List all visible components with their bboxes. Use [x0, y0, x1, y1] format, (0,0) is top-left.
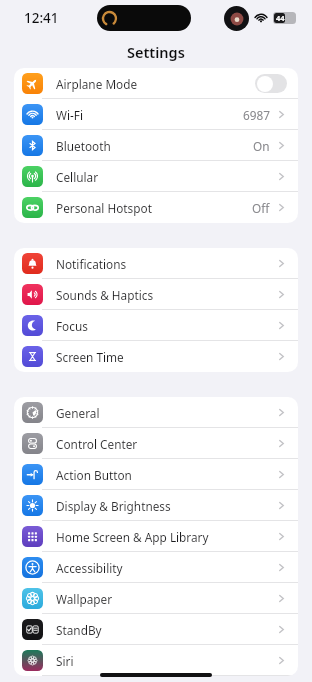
- button[interactable]: Home Screen & App Library: [14, 521, 298, 552]
- button[interactable]: Wi-Fi: [14, 99, 298, 130]
- staticText: Control Center: [56, 436, 276, 452]
- staticText: On: [253, 138, 270, 154]
- button[interactable]: Notifications: [14, 248, 298, 279]
- staticText: Accessibility: [56, 560, 276, 576]
- button[interactable]: Screen Time: [14, 341, 298, 372]
- staticText: General: [56, 405, 276, 421]
- staticText: Settings: [127, 42, 185, 62]
- staticText: Home Screen & App Library: [56, 529, 276, 545]
- button[interactable]: Bluetooth: [14, 130, 298, 161]
- staticText: Notifications: [56, 256, 276, 272]
- staticText: Off: [252, 200, 270, 216]
- staticText: Wi-Fi: [56, 107, 243, 123]
- button[interactable]: Sounds & Haptics: [14, 279, 298, 310]
- staticText: 44: [276, 13, 285, 23]
- button[interactable]: Focus: [14, 310, 298, 341]
- staticText: Action Button: [56, 467, 276, 483]
- button[interactable]: Siri: [14, 645, 298, 676]
- staticText: Airplane Mode: [56, 76, 255, 92]
- button[interactable]: General: [14, 397, 298, 428]
- staticText: Focus: [56, 318, 276, 334]
- staticText: Siri: [56, 653, 276, 669]
- button[interactable]: Personal Hotspot: [14, 192, 298, 223]
- staticText: Personal Hotspot: [56, 200, 252, 216]
- button[interactable]: Accessibility: [14, 552, 298, 583]
- button[interactable]: Control Center: [14, 428, 298, 459]
- button[interactable]: Wallpaper: [14, 583, 298, 614]
- staticText: Wallpaper: [56, 591, 276, 607]
- other: Airplane Mode toggle: [255, 74, 287, 93]
- staticText: Bluetooth: [56, 138, 253, 154]
- staticText: Display & Brightness: [56, 498, 276, 514]
- staticText: Screen Time: [56, 349, 276, 365]
- staticText: StandBy: [56, 622, 276, 638]
- staticText: 12:41: [24, 9, 59, 27]
- button[interactable]: StandBy: [14, 614, 298, 645]
- staticText: 6987: [243, 107, 270, 123]
- button[interactable]: Display & Brightness: [14, 490, 298, 521]
- button[interactable]: Action Button: [14, 459, 298, 490]
- button[interactable]: Airplane Mode: [14, 68, 298, 99]
- button[interactable]: Cellular: [14, 161, 298, 192]
- staticText: Sounds & Haptics: [56, 287, 276, 303]
- staticText: Cellular: [56, 169, 276, 185]
